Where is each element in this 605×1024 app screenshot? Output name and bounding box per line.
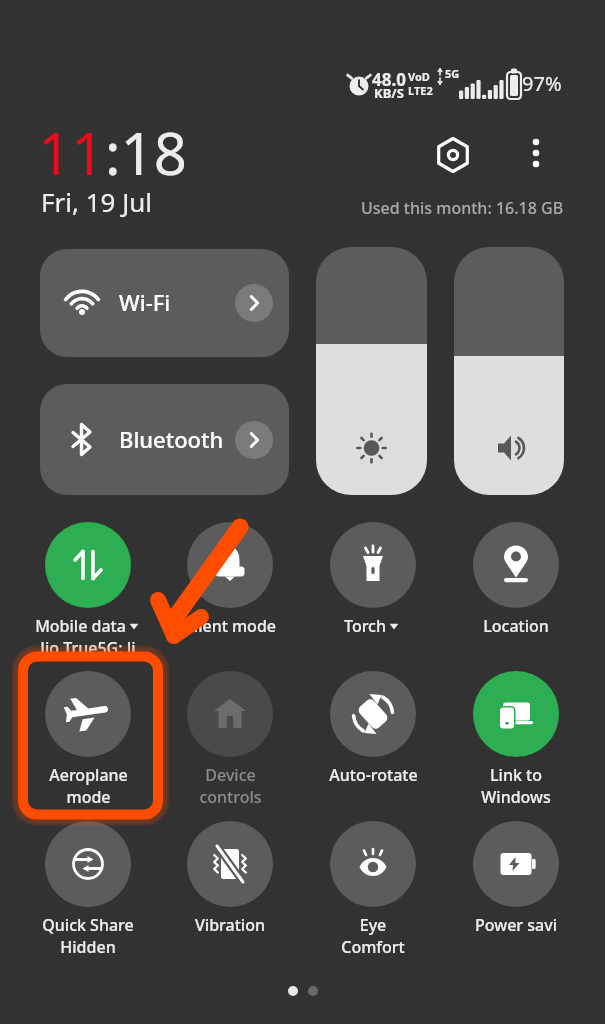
staticText: VoD bbox=[408, 69, 430, 84]
staticText: KB/S bbox=[374, 84, 404, 102]
staticText: Torch bbox=[344, 615, 386, 637]
staticText: Quick Share bbox=[42, 914, 134, 936]
button[interactable]: Bluetooth bbox=[40, 384, 289, 495]
staticText: Auto-rotate bbox=[329, 764, 418, 786]
staticText: Silent mode bbox=[185, 615, 276, 637]
staticText: Power savi bbox=[475, 914, 557, 936]
staticText: Mobile data bbox=[35, 615, 126, 637]
button[interactable]: Aeroplane mode bbox=[17, 671, 159, 801]
button[interactable]: Slider bbox=[316, 247, 427, 495]
staticText: Device controls bbox=[199, 764, 262, 808]
button[interactable]: Vibration bbox=[159, 821, 301, 951]
staticText: Bluetooth bbox=[119, 424, 224, 454]
staticText: :18 bbox=[105, 113, 187, 192]
button[interactable]: Power savi bbox=[445, 821, 587, 951]
staticText: Used this month: 16.18 GB bbox=[361, 197, 564, 219]
button[interactable]: Quick Share bbox=[17, 821, 159, 951]
button[interactable]: Location bbox=[445, 522, 587, 652]
button[interactable]: Silent mode bbox=[159, 522, 301, 652]
staticText: Location bbox=[483, 615, 549, 637]
staticText: 97% bbox=[522, 70, 562, 97]
staticText: 48.0 bbox=[372, 68, 406, 91]
staticText: LTE2 bbox=[408, 83, 433, 98]
button[interactable]: More options bbox=[514, 131, 558, 175]
staticText: Aeroplane mode bbox=[49, 764, 128, 808]
button[interactable]: Open Wi-Fi settings bbox=[235, 284, 273, 322]
button[interactable]: Device controls bbox=[159, 671, 301, 801]
staticText: 11 bbox=[38, 113, 105, 192]
button[interactable]: Eye Comfort bbox=[302, 821, 444, 951]
button[interactable]: Auto-rotate bbox=[302, 671, 444, 801]
button[interactable]: Settings bbox=[429, 131, 477, 179]
button[interactable]: Wi-Fi bbox=[40, 249, 289, 357]
staticText: Hidden bbox=[60, 936, 116, 958]
staticText: Vibration bbox=[195, 914, 265, 936]
button[interactable]: Mobile data bbox=[17, 522, 159, 652]
staticText: Link to Windows bbox=[481, 764, 551, 808]
staticText: Jio True5G: Ji bbox=[40, 637, 136, 659]
button[interactable]: Torch bbox=[302, 522, 444, 652]
button[interactable]: Slider bbox=[454, 247, 564, 495]
staticText: Eye Comfort bbox=[341, 914, 405, 958]
button[interactable]: Link to Windows bbox=[445, 671, 587, 801]
staticText: Wi-Fi bbox=[119, 287, 171, 317]
button[interactable]: Open Bluetooth settings bbox=[235, 421, 273, 459]
staticText: Fri, 19 Jul bbox=[41, 184, 153, 219]
staticText: 5G bbox=[445, 66, 460, 81]
